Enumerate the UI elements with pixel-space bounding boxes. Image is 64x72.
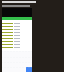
button[interactable] [2,40,32,43]
button[interactable] [26,67,29,72]
button[interactable] [2,22,32,25]
button[interactable] [2,46,32,49]
button[interactable] [2,34,32,37]
button[interactable] [2,37,32,40]
button[interactable] [2,43,32,46]
button[interactable] [2,28,32,31]
button[interactable] [2,31,32,34]
button[interactable] [29,67,32,72]
button[interactable] [2,25,32,28]
